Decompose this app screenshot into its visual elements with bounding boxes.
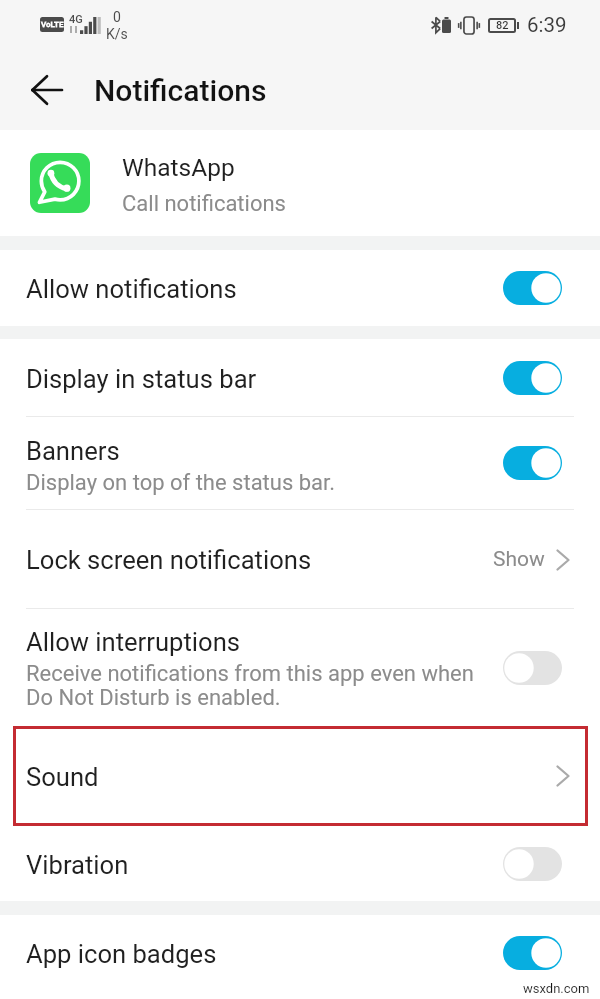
staticText: Allow notifications [26, 274, 237, 304]
other: WhatsApp icon [30, 153, 90, 213]
staticText: Lock screen notifications [26, 545, 312, 575]
button[interactable]: App icon badges [0, 915, 600, 991]
button[interactable]: Back [20, 63, 74, 117]
staticText: Notifications [94, 73, 267, 108]
button[interactable]: Switch on [503, 361, 562, 395]
button[interactable]: WhatsApp icon [0, 130, 600, 236]
staticText: WhatsApp [122, 153, 235, 182]
staticText: 0 [113, 9, 121, 25]
staticText: Display in status bar [26, 364, 257, 394]
button[interactable]: Switch off [503, 847, 562, 881]
staticText: Banners [26, 436, 120, 466]
staticText: Allow interruptions [26, 627, 240, 657]
button[interactable]: Allow interruptions [0, 609, 600, 726]
staticText: 4G [69, 13, 83, 26]
button[interactable]: Banners [0, 417, 600, 509]
button[interactable]: Sound [0, 726, 600, 826]
staticText: K/s [106, 26, 128, 42]
button[interactable]: Display in status bar [0, 339, 600, 416]
staticText: Show [493, 547, 545, 572]
staticText: Sound [26, 762, 556, 792]
staticText: Call notifications [122, 191, 286, 217]
staticText: VoLTE [41, 20, 64, 29]
button[interactable]: Switch on [503, 936, 562, 970]
staticText: Vibration [26, 850, 129, 880]
staticText: Receive notifications from this app even… [26, 661, 474, 710]
staticText: Display on top of the status bar. [26, 470, 336, 496]
staticText: wsxdn.com [523, 981, 590, 996]
button[interactable]: Switch off [503, 651, 562, 685]
staticText: App icon badges [26, 939, 217, 969]
button[interactable]: Lock screen notifications [0, 510, 600, 608]
button[interactable]: Switch on [503, 446, 562, 480]
button[interactable]: Allow notifications [0, 250, 600, 326]
button[interactable]: Switch on [503, 271, 562, 305]
staticText: 82 [496, 19, 509, 32]
button[interactable]: Vibration [0, 826, 600, 901]
staticText: 6:39 [527, 13, 567, 37]
